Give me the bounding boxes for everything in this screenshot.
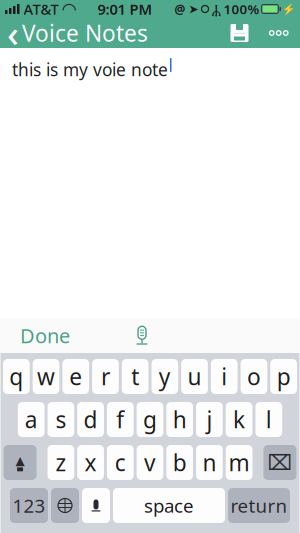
staticText: z [55, 447, 66, 477]
staticText: g [143, 404, 157, 434]
staticText: y [159, 361, 171, 391]
staticText: v [144, 447, 156, 477]
button[interactable]: s [48, 402, 74, 437]
button[interactable]: q [3, 359, 30, 394]
button[interactable]: r [92, 359, 119, 394]
button[interactable]: x [77, 445, 104, 480]
button[interactable]: i [211, 359, 238, 394]
button[interactable]: p [270, 359, 297, 394]
button[interactable]: Next keyboard [51, 488, 79, 523]
button[interactable]: y [151, 359, 178, 394]
button[interactable]: m [226, 445, 252, 480]
button[interactable]: a [18, 402, 45, 437]
button[interactable]: t [122, 359, 148, 394]
staticText: ▲ [16, 454, 25, 467]
staticText: Voice Notes [22, 18, 148, 48]
staticText: m [229, 447, 250, 477]
staticText: o [247, 361, 261, 391]
button[interactable]: ‹ [0, 18, 156, 48]
button[interactable]: g [137, 402, 163, 437]
staticText: k [233, 404, 245, 434]
staticText: ᛦ [211, 1, 220, 17]
staticText: h [173, 404, 187, 434]
staticText: ‹ [7, 9, 19, 57]
button[interactable]: k [226, 402, 252, 437]
staticText: w [37, 361, 55, 391]
staticText: a [25, 404, 38, 434]
staticText: return [230, 493, 287, 518]
staticText: AT&T [23, 0, 58, 19]
button[interactable]: return [228, 488, 290, 523]
button[interactable]: b [166, 445, 193, 480]
button[interactable]: o [241, 359, 267, 394]
staticText: e [69, 361, 82, 391]
staticText: t [131, 361, 139, 391]
staticText: r [101, 361, 110, 391]
button[interactable]: u [181, 359, 208, 394]
button[interactable]: Record voice note [124, 319, 160, 351]
staticText: Done [20, 322, 70, 349]
button[interactable]: Save [221, 18, 257, 48]
staticText: s [55, 404, 66, 434]
staticText: 100% [223, 0, 259, 18]
staticText: @ [174, 1, 185, 17]
button[interactable]: Delete [263, 445, 296, 480]
button[interactable]: More options [257, 18, 300, 48]
staticText: ◠ [62, 0, 75, 19]
staticText: space [144, 493, 194, 518]
button[interactable]: f [107, 402, 134, 437]
staticText: x [85, 447, 97, 477]
button[interactable]: Done [8, 319, 82, 351]
staticText: n [202, 447, 216, 477]
staticText: ⌧ [267, 450, 292, 475]
staticText: f [116, 404, 124, 434]
staticText: 9:01 PM [97, 0, 152, 19]
staticText: ⚡ [282, 3, 295, 15]
staticText: i [221, 361, 227, 391]
button[interactable]: space [113, 488, 225, 523]
button[interactable]: h [166, 402, 193, 437]
staticText: j [206, 404, 212, 434]
button[interactable]: c [107, 445, 134, 480]
staticText: b [173, 447, 187, 477]
button[interactable]: 123 [10, 488, 48, 523]
button[interactable]: e [62, 359, 89, 394]
button[interactable]: w [33, 359, 59, 394]
staticText: this is my voie note [12, 58, 168, 81]
button[interactable]: d [77, 402, 104, 437]
staticText: p [277, 361, 291, 391]
staticText: ➤ [188, 2, 198, 16]
staticText: q [9, 361, 23, 391]
button[interactable]: n [196, 445, 223, 480]
button[interactable]: Shift [4, 445, 37, 480]
button[interactable]: z [48, 445, 74, 480]
button[interactable]: v [137, 445, 163, 480]
staticText: 123 [12, 493, 45, 518]
button[interactable]: l [255, 402, 282, 437]
staticText: u [188, 361, 202, 391]
staticText: l [266, 404, 272, 434]
staticText: d [84, 404, 98, 434]
staticText: c [115, 447, 126, 477]
button[interactable]: j [196, 402, 223, 437]
button[interactable]: Dictate [82, 488, 110, 523]
